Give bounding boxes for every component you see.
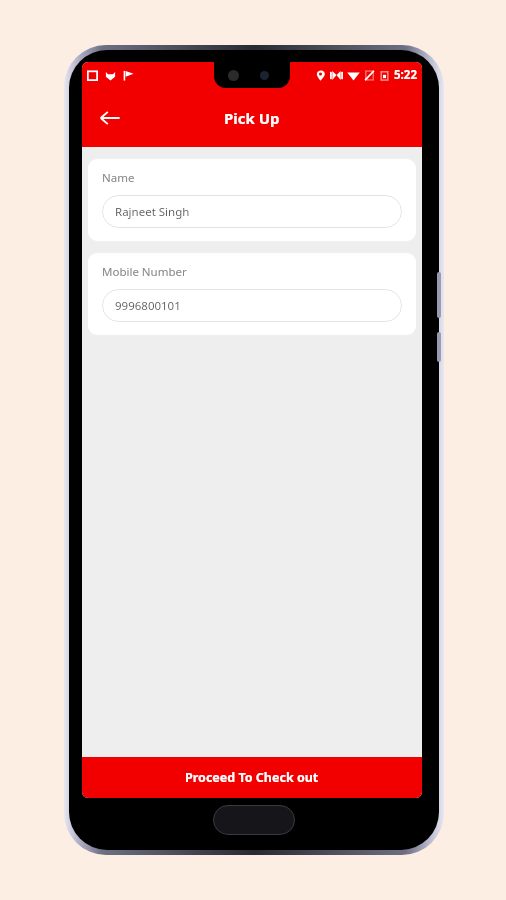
staticText: Rajneet Singh [115,204,190,220]
button[interactable]: Back [90,98,130,138]
button[interactable]: Rajneet Singh [102,195,402,228]
staticText: Name [102,170,135,186]
staticText: 5:22 [394,67,417,83]
button[interactable]: 9996800101 [102,289,402,322]
staticText: Mobile Number [102,264,187,280]
staticText: Pick Up [224,108,280,128]
staticText: Proceed To Check out [185,769,319,786]
staticText: 9996800101 [115,298,181,314]
button[interactable]: Proceed To Check out [82,757,422,798]
button[interactable]: Mobile Number [88,253,416,335]
button[interactable]: Name [88,159,416,241]
button[interactable]: Home [213,805,295,835]
